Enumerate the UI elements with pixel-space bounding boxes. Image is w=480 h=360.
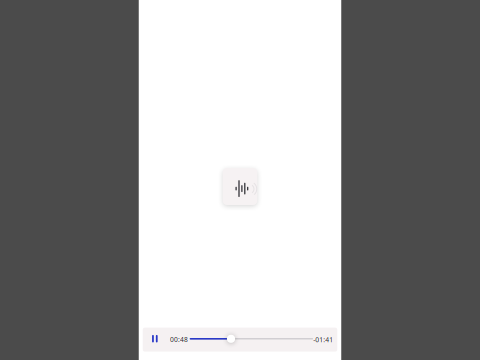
staticText: -01:41 [313, 335, 333, 344]
button[interactable]: Audio message [223, 168, 257, 205]
staticText: 00:48 [170, 335, 188, 344]
button[interactable]: Pause [149, 327, 160, 351]
